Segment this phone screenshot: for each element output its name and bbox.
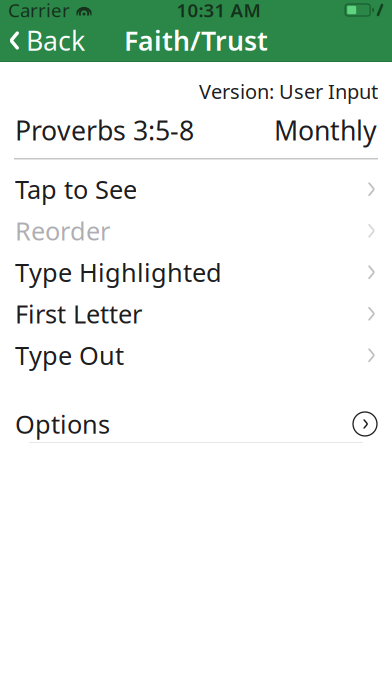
button[interactable]: Type Highlighted [0,251,392,293]
staticText: Proverbs 3:5-8 [15,113,194,148]
staticText: Back [26,23,85,58]
button[interactable]: Type Out [0,334,392,376]
staticText: Reorder [15,214,110,247]
staticText: Tap to See [15,172,137,206]
button[interactable]: Back [0,15,85,66]
staticText: Carrier [8,0,70,22]
staticText: Monthly [274,113,377,148]
staticText: Options [15,407,110,441]
staticText: Type Highlighted [15,255,222,289]
staticText: 10:31 AM [177,0,261,22]
staticText: First Letter [15,297,142,330]
staticText: Version: User Input [199,78,378,105]
button[interactable]: Tap to See [0,168,392,210]
button[interactable]: First Letter [0,293,392,334]
button[interactable]: Options [0,406,392,443]
staticText: Faith/Trust [124,23,268,58]
staticText: Type Out [15,338,124,372]
button[interactable]: Reorder [0,210,392,251]
